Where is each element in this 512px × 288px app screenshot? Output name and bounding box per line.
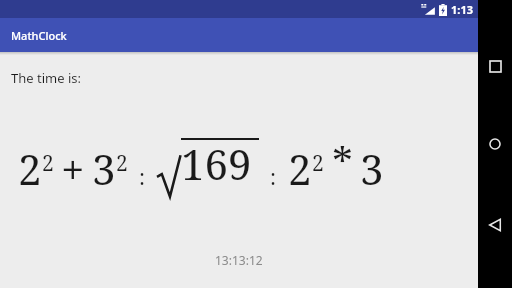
- button[interactable]: Recent apps: [481, 52, 509, 80]
- staticText: :: [270, 163, 277, 192]
- staticText: 169: [181, 135, 252, 192]
- staticText: 2: [18, 140, 42, 197]
- staticText: 3: [360, 140, 384, 197]
- staticText: +: [61, 140, 85, 197]
- staticText: 3: [92, 140, 116, 197]
- staticText: 2: [288, 140, 312, 197]
- button[interactable]: Home: [481, 130, 509, 158]
- staticText: MathClock: [11, 28, 67, 43]
- staticText: 2: [312, 149, 324, 178]
- button[interactable]: Back: [481, 211, 509, 239]
- staticText: 2: [116, 149, 128, 178]
- staticText: 1:13: [451, 2, 473, 17]
- staticText: 13:13:12: [215, 252, 263, 268]
- staticText: 2: [42, 149, 54, 178]
- staticText: *: [332, 133, 354, 190]
- staticText: The time is:: [11, 69, 81, 87]
- button[interactable]: MathClock: [11, 28, 67, 43]
- staticText: :: [139, 163, 146, 192]
